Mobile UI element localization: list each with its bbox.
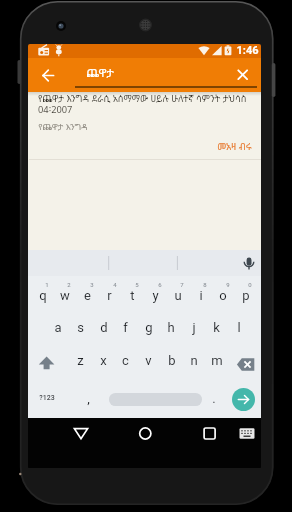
button[interactable]: n — [182, 351, 205, 369]
staticText: 9 — [226, 281, 230, 288]
staticText: የጨዋታ እንግዳ — [38, 120, 88, 132]
staticText: 1 — [45, 281, 49, 288]
staticText: b — [168, 353, 176, 368]
button[interactable]: z — [69, 351, 92, 369]
button[interactable]: k — [205, 318, 228, 336]
button[interactable]: m — [205, 351, 228, 369]
staticText: c — [122, 353, 129, 368]
staticText: 5 — [135, 281, 139, 288]
button[interactable]: v — [137, 351, 160, 369]
staticText: 0 — [248, 281, 252, 288]
staticText: k — [213, 320, 220, 335]
button[interactable]: u — [166, 286, 189, 304]
staticText: , — [87, 391, 90, 406]
staticText: l — [237, 320, 241, 335]
button[interactable]: h — [159, 318, 182, 336]
button[interactable]: j — [182, 318, 205, 336]
staticText: p — [242, 288, 250, 303]
staticText: q — [39, 288, 47, 303]
button[interactable]: p — [234, 286, 257, 304]
button[interactable] — [236, 250, 256, 272]
button[interactable] — [131, 420, 159, 448]
staticText: v — [145, 353, 152, 368]
staticText: e — [84, 288, 91, 303]
button[interactable]: e — [76, 286, 99, 304]
staticText: . — [212, 391, 216, 406]
staticText: a — [54, 320, 62, 335]
staticText: n — [190, 353, 198, 368]
button[interactable]: f — [114, 318, 137, 336]
button[interactable]: ?123 — [33, 391, 60, 405]
button[interactable] — [67, 420, 95, 448]
button[interactable] — [109, 393, 202, 406]
staticText: x — [100, 353, 107, 368]
button[interactable]: q — [31, 286, 54, 304]
staticText: m — [211, 353, 223, 368]
button[interactable]: . — [208, 390, 220, 406]
button[interactable]: y — [144, 286, 167, 304]
button[interactable]: b — [160, 351, 183, 369]
staticText: ?123 — [39, 394, 55, 402]
button[interactable]: i — [189, 286, 212, 304]
staticText: መአዛ ብሩ — [217, 140, 252, 153]
staticText: f — [123, 320, 128, 335]
staticText: y — [152, 288, 159, 303]
button[interactable]: w — [53, 286, 76, 304]
staticText: z — [77, 353, 84, 368]
button[interactable]: የጨዋታ እንግዳ ደራሲ አሰማማው ሀይሉ ሁለተኛ ሳምንት ታህሳስ 0… — [38, 92, 254, 118]
staticText: j — [192, 320, 196, 335]
button[interactable]: g — [137, 318, 160, 336]
staticText: 7 — [180, 281, 184, 288]
staticText: r — [107, 288, 112, 303]
button[interactable]: l — [227, 318, 250, 336]
button[interactable]: , — [82, 390, 94, 406]
staticText: g — [145, 320, 153, 335]
staticText: 3 — [90, 281, 94, 288]
button[interactable] — [238, 426, 256, 441]
staticText: h — [167, 320, 175, 335]
staticText: 2 — [67, 281, 71, 288]
staticText: i — [199, 288, 203, 303]
staticText: 8 — [203, 281, 207, 288]
button[interactable] — [34, 352, 60, 374]
staticText: u — [174, 288, 182, 303]
button[interactable] — [232, 388, 255, 411]
button[interactable]: d — [92, 318, 115, 336]
button[interactable] — [235, 356, 257, 373]
staticText: የጨዋታ እንግዳ ደራሲ አሰማማው ሀይሉ ሁለተኛ ሳምንት ታህሳስ 0… — [38, 92, 254, 115]
button[interactable] — [34, 61, 62, 89]
button[interactable]: r — [98, 286, 121, 304]
button[interactable]: o — [211, 286, 234, 304]
button[interactable]: s — [69, 318, 92, 336]
button[interactable]: መአዛ ብሩ — [150, 140, 252, 153]
button[interactable]: a — [46, 318, 69, 336]
button[interactable]: c — [114, 351, 137, 369]
staticText: 6 — [158, 281, 162, 288]
staticText: t — [130, 288, 135, 303]
staticText: ጨዋታ — [86, 64, 114, 80]
button[interactable] — [196, 420, 224, 448]
staticText: o — [219, 288, 227, 303]
staticText: s — [77, 320, 84, 335]
button[interactable] — [231, 62, 255, 86]
staticText: d — [100, 320, 108, 335]
button[interactable]: t — [121, 286, 144, 304]
button[interactable]: x — [92, 351, 115, 369]
staticText: 4 — [113, 281, 117, 288]
staticText: 1:46 — [236, 44, 259, 57]
staticText: w — [60, 288, 70, 303]
